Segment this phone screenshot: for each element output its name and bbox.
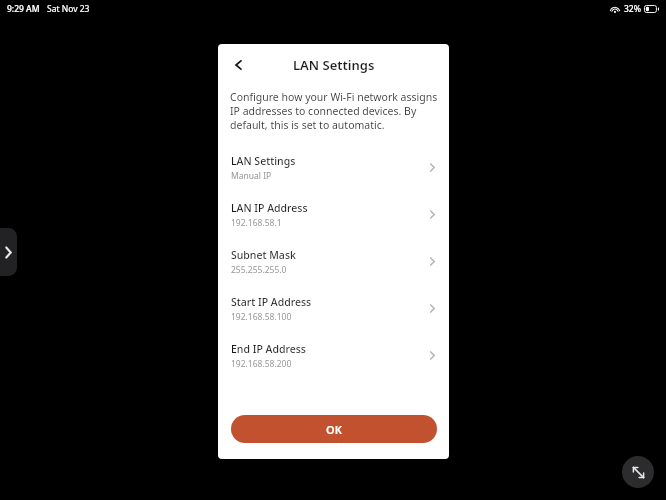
staticText: Start IP Address — [231, 295, 312, 309]
staticText: Configure how your Wi-Fi network assigns… — [230, 90, 438, 132]
staticText: 192.168.58.1 — [231, 217, 282, 229]
button[interactable]: Start IP Address — [218, 285, 449, 332]
staticText: LAN IP Address — [231, 201, 308, 215]
staticText: 192.168.58.100 — [231, 311, 292, 323]
staticText: 32% — [624, 3, 641, 15]
button[interactable]: End IP Address — [218, 332, 449, 379]
staticText: 9:29 AM — [7, 3, 40, 15]
staticText: 192.168.58.200 — [231, 358, 292, 370]
button[interactable]: LAN Settings — [218, 144, 449, 191]
staticText: LAN Settings — [231, 154, 296, 168]
staticText: Sat Nov 23 — [47, 3, 90, 15]
button[interactable]: Subnet Mask — [218, 238, 449, 285]
staticText: End IP Address — [231, 342, 306, 356]
staticText: OK — [326, 422, 342, 437]
button[interactable]: Open side panel — [0, 228, 17, 276]
staticText: 255.255.255.0 — [231, 264, 287, 276]
button[interactable]: LAN IP Address — [218, 191, 449, 238]
button[interactable]: Back — [225, 52, 251, 78]
button[interactable]: Resize window — [622, 456, 654, 488]
button[interactable]: OK — [231, 415, 437, 443]
staticText: Subnet Mask — [231, 248, 296, 262]
staticText: Manual IP — [231, 170, 272, 182]
staticText: LAN Settings — [293, 56, 375, 74]
